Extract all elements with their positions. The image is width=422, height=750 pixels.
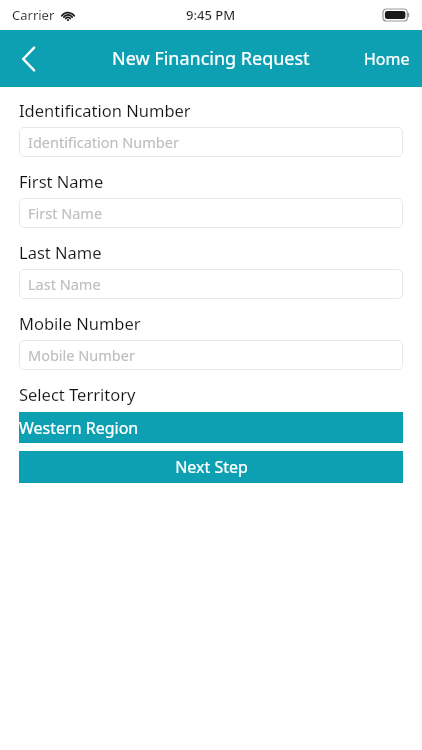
staticText: Western Region <box>19 417 139 439</box>
staticText: First Name <box>28 203 103 223</box>
staticText: Carrier <box>12 6 55 24</box>
staticText: Mobile Number <box>19 312 141 334</box>
staticText: Home <box>364 48 410 70</box>
staticText: 9:45 PM <box>186 6 236 24</box>
staticText: Identification Number <box>28 132 179 152</box>
button[interactable]: Identification Number <box>19 127 403 157</box>
staticText: New Financing Request <box>112 46 310 71</box>
staticText: Next Step <box>175 456 248 478</box>
staticText: Select Territory <box>19 383 136 405</box>
button[interactable]: Home <box>352 30 422 87</box>
button[interactable]: Last Name <box>19 269 403 299</box>
staticText: Last Name <box>28 274 101 294</box>
staticText: First Name <box>19 170 104 192</box>
button[interactable]: Next Step <box>19 451 403 483</box>
button[interactable]: Mobile Number <box>19 340 403 370</box>
staticText: Mobile Number <box>28 345 135 365</box>
button[interactable]: First Name <box>19 198 403 228</box>
button[interactable]: Back <box>0 30 58 87</box>
button[interactable]: Western Region <box>19 412 403 443</box>
staticText: Identification Number <box>19 99 191 121</box>
staticText: Last Name <box>19 241 102 263</box>
